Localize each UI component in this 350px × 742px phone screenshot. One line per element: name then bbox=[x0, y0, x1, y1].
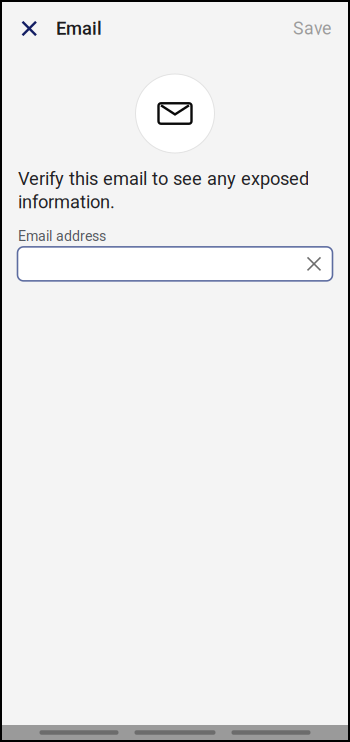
staticText: Save bbox=[293, 18, 331, 39]
button[interactable]: Save bbox=[273, 4, 348, 53]
button[interactable]: Email address bbox=[17, 247, 332, 281]
staticText: Email address bbox=[18, 228, 106, 244]
button[interactable]: Close bbox=[2, 4, 36, 53]
staticText: Verify this email to see any exposed inf… bbox=[18, 168, 309, 213]
staticText: Email bbox=[56, 18, 102, 39]
button[interactable]: Clear text bbox=[295, 247, 332, 281]
